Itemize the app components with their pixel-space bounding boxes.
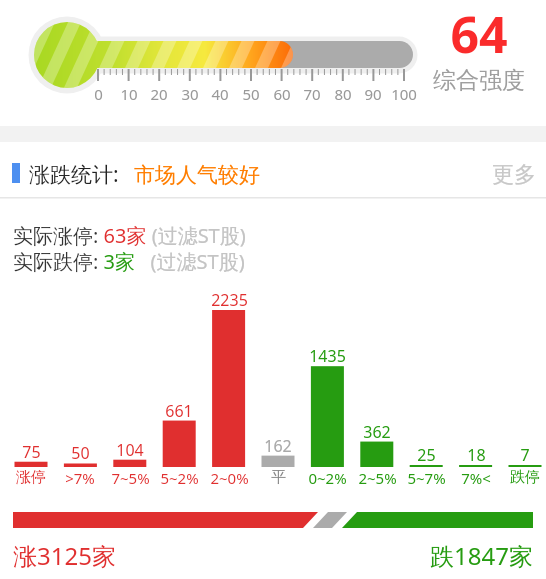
staticText: 25	[417, 444, 436, 466]
staticText: 7~5%	[111, 468, 150, 488]
staticText: 实际跌停: 3家 (过滤ST股)	[13, 248, 245, 275]
staticText: 100	[391, 84, 417, 104]
staticText: 64	[450, 0, 508, 68]
staticText: 7%<	[461, 468, 491, 488]
staticText: 362	[363, 421, 391, 443]
staticText: 2~5%	[358, 468, 397, 488]
staticText: 50	[242, 84, 260, 104]
staticText: 平	[271, 468, 286, 487]
staticText: 60	[273, 84, 291, 104]
staticText: 162	[264, 435, 292, 457]
staticText: 更多	[492, 161, 536, 189]
staticText: 20	[150, 84, 168, 104]
button[interactable]: 更多	[492, 161, 536, 189]
staticText: 1435	[309, 345, 346, 367]
staticText: 跌停	[510, 468, 540, 487]
staticText: 7	[520, 444, 530, 466]
staticText: 5~2%	[160, 468, 199, 488]
button[interactable]: 涨跌统计:	[29, 160, 260, 189]
staticText: 综合强度	[433, 66, 525, 95]
staticText: 0	[94, 84, 103, 104]
staticText: 90	[364, 84, 382, 104]
staticText: 10	[120, 84, 138, 104]
staticText: 104	[116, 439, 144, 461]
staticText: 市场人气较好	[134, 162, 260, 188]
staticText: 75	[22, 441, 41, 463]
staticText: 0~2%	[308, 468, 347, 488]
staticText: 跌1847家	[430, 539, 533, 572]
staticText: 涨3125家	[13, 539, 116, 572]
staticText: 5~7%	[407, 468, 446, 488]
staticText: 30	[181, 84, 199, 104]
staticText: 2~0%	[210, 468, 249, 488]
staticText: 涨停	[16, 468, 46, 487]
staticText: 18	[467, 444, 486, 466]
staticText: 40	[211, 84, 229, 104]
staticText: 50	[71, 442, 90, 464]
staticText: >7%	[65, 468, 95, 488]
staticText: 70	[303, 84, 321, 104]
staticText: 80	[334, 84, 352, 104]
staticText: 2235	[211, 289, 248, 311]
staticText: 实际涨停: 63家 (过滤ST股)	[13, 222, 246, 249]
staticText: 涨跌统计:	[29, 160, 125, 189]
staticText: 661	[165, 400, 193, 422]
